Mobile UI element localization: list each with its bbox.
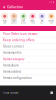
staticText: Love	[31, 22, 35, 24]
staticText: Great contact	[3, 45, 24, 48]
staticText: Amber	[48, 20, 54, 22]
button[interactable]: Your Order is on its way	[0, 31, 56, 37]
button[interactable]: Menu	[50, 91, 53, 94]
button[interactable]: Peach	[9, 13, 19, 24]
button[interactable]: Keep ordering offers	[0, 37, 56, 44]
staticText: Items share	[3, 64, 19, 67]
button[interactable]: Heart	[28, 13, 37, 24]
staticText: Items added	[3, 70, 21, 73]
staticText: Heart	[30, 20, 35, 22]
button[interactable]: Amber	[47, 13, 56, 24]
staticText: Leaf	[21, 20, 25, 22]
button[interactable]: Leaf	[19, 13, 28, 24]
staticText: Peach	[11, 20, 16, 22]
staticText: Items category	[3, 57, 25, 61]
staticText: Soft	[40, 22, 44, 24]
staticText: Items months	[3, 51, 21, 55]
staticText: Collection	[7, 5, 23, 9]
staticText: ▪▪▪ ▮	[49, 1, 54, 3]
staticText: Pink	[3, 22, 6, 24]
button[interactable]: Great contact	[0, 44, 56, 50]
staticText: Your Orders	[3, 91, 18, 94]
staticText: Warm	[11, 22, 17, 24]
button[interactable]: Rose	[0, 13, 9, 24]
button[interactable]: Items category	[0, 56, 56, 62]
staticText: Lilac	[40, 20, 43, 22]
staticText: Items configuration	[3, 76, 32, 80]
staticText: Sun	[50, 22, 53, 24]
staticText: Keep ordering offers	[3, 39, 34, 42]
button[interactable]: Items configuration	[0, 75, 56, 81]
button[interactable]: Items months	[0, 50, 56, 56]
staticText: Green	[21, 22, 26, 24]
button[interactable]: Items share	[0, 62, 56, 69]
button[interactable]: Back	[2, 4, 6, 9]
button[interactable]: Lilac	[37, 13, 47, 24]
staticText: Rose	[3, 20, 7, 22]
button[interactable]: Items added	[0, 69, 56, 75]
staticText: Your Order is on its way	[3, 32, 38, 36]
